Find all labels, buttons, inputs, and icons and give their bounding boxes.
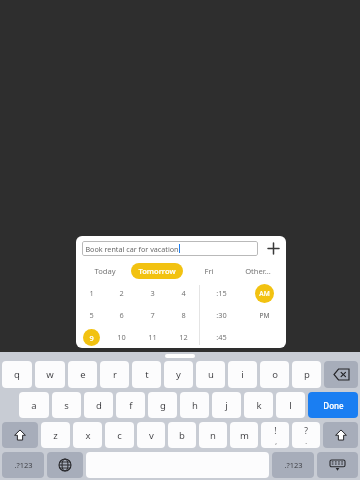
button[interactable]: 12 <box>168 326 199 348</box>
button[interactable]: l <box>276 392 305 418</box>
staticText: s <box>64 399 69 412</box>
button[interactable]: 10 <box>106 326 137 348</box>
staticText: 2 <box>119 288 124 298</box>
staticText: z <box>53 429 58 442</box>
button[interactable]: Fri <box>184 260 233 282</box>
staticText: :30 <box>216 310 227 320</box>
button[interactable]: :30 <box>200 304 243 326</box>
staticText: m <box>240 429 249 442</box>
button[interactable]: Shift <box>2 422 38 448</box>
staticText: Book rental car for vacation <box>85 244 179 254</box>
staticText: o <box>272 368 278 381</box>
button[interactable]: c <box>105 422 134 448</box>
staticText: ? <box>304 425 308 437</box>
staticText: :15 <box>216 288 227 298</box>
button[interactable]: 8 <box>168 304 199 326</box>
button[interactable]: ! <box>261 422 289 448</box>
button[interactable]: 6 <box>106 304 137 326</box>
button[interactable]: r <box>100 361 129 388</box>
staticText: i <box>241 368 244 381</box>
button[interactable]: :15 <box>200 282 243 304</box>
button[interactable]: Backspace <box>324 361 358 388</box>
button[interactable]: Add task <box>265 240 281 256</box>
button[interactable]: Other... <box>233 260 282 282</box>
button[interactable]: Change language <box>47 452 83 478</box>
button[interactable]: y <box>164 361 193 388</box>
staticText: 10 <box>117 332 126 342</box>
staticText: f <box>129 399 133 412</box>
staticText: PM <box>259 311 270 320</box>
button[interactable]: n <box>199 422 227 448</box>
button[interactable]: :45 <box>200 326 243 348</box>
staticText: :45 <box>216 332 227 342</box>
staticText: 9 <box>89 333 94 343</box>
staticText: 4 <box>181 288 186 298</box>
button[interactable]: x <box>73 422 102 448</box>
button[interactable]: u <box>196 361 225 388</box>
button[interactable]: PM <box>255 306 274 325</box>
button[interactable]: 7 <box>137 304 168 326</box>
button[interactable]: 9 <box>76 326 106 348</box>
staticText: Today <box>94 266 116 276</box>
button[interactable]: e <box>68 361 97 388</box>
button[interactable]: .?123 <box>272 452 314 478</box>
staticText: k <box>256 399 262 412</box>
button[interactable]: o <box>260 361 289 388</box>
button[interactable]: 11 <box>137 326 168 348</box>
staticText: Tomorrow <box>138 266 176 276</box>
button[interactable]: Done <box>308 392 358 418</box>
button[interactable]: j <box>212 392 241 418</box>
button[interactable]: .?123 <box>2 452 44 478</box>
staticText: w <box>46 368 54 381</box>
staticText: 8 <box>181 310 186 320</box>
button[interactable]: k <box>244 392 273 418</box>
staticText: g <box>160 399 166 412</box>
button[interactable]: h <box>180 392 209 418</box>
staticText: j <box>225 399 228 412</box>
staticText: n <box>210 429 216 442</box>
staticText: .?123 <box>14 460 33 470</box>
staticText: b <box>179 429 185 442</box>
button[interactable]: AM <box>255 284 274 303</box>
button[interactable]: Today <box>80 260 130 282</box>
button[interactable]: a <box>19 392 49 418</box>
staticText: y <box>176 368 181 381</box>
button[interactable]: w <box>35 361 65 388</box>
button[interactable]: Book rental car for vacation <box>82 241 258 256</box>
staticText: u <box>208 368 214 381</box>
button[interactable]: 2 <box>106 282 137 304</box>
staticText: x <box>85 429 91 442</box>
button[interactable]: m <box>230 422 258 448</box>
button[interactable]: Tomorrow <box>130 260 184 282</box>
button[interactable]: f <box>116 392 145 418</box>
button[interactable]: i <box>228 361 257 388</box>
staticText: a <box>31 399 37 412</box>
button[interactable]: b <box>168 422 196 448</box>
button[interactable]: q <box>2 361 32 388</box>
staticText: Fri <box>204 266 214 276</box>
button[interactable]: ? <box>292 422 320 448</box>
button[interactable]: p <box>292 361 321 388</box>
button[interactable]: Hide keyboard <box>317 452 358 478</box>
button[interactable]: t <box>132 361 161 388</box>
staticText: r <box>113 368 117 381</box>
staticText: l <box>289 399 292 412</box>
button[interactable]: s <box>52 392 81 418</box>
staticText: ! <box>274 425 277 437</box>
button[interactable]: 1 <box>76 282 106 304</box>
button[interactable]: Shift <box>323 422 358 448</box>
button[interactable]: z <box>41 422 70 448</box>
staticText: 7 <box>150 310 155 320</box>
staticText: 12 <box>179 332 188 342</box>
staticText: h <box>192 399 198 412</box>
staticText: , <box>275 437 277 446</box>
button[interactable]: 3 <box>137 282 168 304</box>
button[interactable]: g <box>148 392 177 418</box>
button[interactable]: 5 <box>76 304 106 326</box>
staticText: Done <box>323 400 344 411</box>
button[interactable]: d <box>84 392 113 418</box>
button[interactable]: v <box>137 422 165 448</box>
staticText: t <box>145 368 149 381</box>
button[interactable]: 4 <box>168 282 199 304</box>
